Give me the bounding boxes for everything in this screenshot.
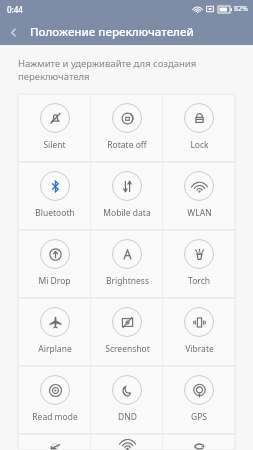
button[interactable] bbox=[91, 434, 163, 450]
button[interactable]: WLAN bbox=[163, 162, 235, 230]
staticText: 82% bbox=[234, 4, 248, 14]
staticText: Screenshot bbox=[105, 343, 150, 355]
button[interactable]: Mi Drop bbox=[18, 230, 91, 298]
button[interactable]: Rotate off bbox=[91, 94, 163, 162]
staticText: WLAN bbox=[187, 207, 212, 219]
staticText: Mi Drop bbox=[38, 275, 71, 287]
staticText: 0:44 bbox=[7, 4, 23, 15]
staticText: Rotate off bbox=[107, 139, 147, 151]
button[interactable]: Airplane bbox=[18, 298, 91, 366]
button[interactable]: Silent bbox=[18, 94, 91, 162]
button[interactable]: Lock bbox=[163, 94, 235, 162]
button[interactable]: Mobile data bbox=[91, 162, 163, 230]
staticText: DND bbox=[118, 411, 137, 423]
button[interactable]: Vibrate bbox=[163, 298, 235, 366]
staticText: Mobile data bbox=[103, 207, 151, 219]
button[interactable]: GPS bbox=[163, 366, 235, 434]
staticText: Нажмите и удерживайте для создания перек… bbox=[18, 57, 197, 83]
staticText: Положение переключателей bbox=[30, 24, 194, 40]
staticText: Brightness bbox=[106, 275, 149, 287]
staticText: Read mode bbox=[32, 411, 78, 423]
staticText: Vibrate bbox=[185, 343, 214, 355]
button[interactable]: DND bbox=[91, 366, 163, 434]
staticText: Torch bbox=[188, 275, 210, 287]
staticText: Bluetooth bbox=[35, 207, 75, 219]
button[interactable]: Screenshot bbox=[91, 298, 163, 366]
button[interactable] bbox=[18, 434, 91, 450]
button[interactable] bbox=[163, 434, 235, 450]
staticText: Silent bbox=[43, 139, 66, 151]
button[interactable]: Torch bbox=[163, 230, 235, 298]
staticText: GPS bbox=[191, 411, 207, 423]
button[interactable]: Brightness bbox=[91, 230, 163, 298]
button[interactable]: Bluetooth bbox=[18, 162, 91, 230]
staticText: Lock bbox=[190, 139, 209, 151]
staticText: Airplane bbox=[38, 343, 72, 355]
button[interactable]: Read mode bbox=[18, 366, 91, 434]
button[interactable]: Back bbox=[0, 19, 26, 45]
